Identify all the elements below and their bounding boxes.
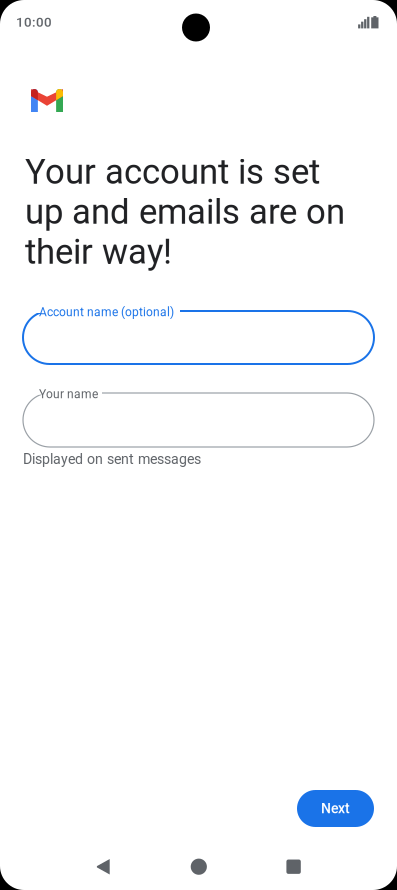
button[interactable]: Next <box>297 790 374 827</box>
staticText: Your name <box>39 387 98 401</box>
staticText: Displayed on sent messages <box>23 451 201 468</box>
staticText: Your account is set <box>25 152 320 192</box>
button[interactable]: Home <box>167 846 231 888</box>
staticText: up and emails are on <box>25 192 345 232</box>
button[interactable]: Account name (optional) <box>23 311 374 364</box>
button[interactable]: Recent apps <box>262 846 325 887</box>
staticText: Account name (optional) <box>39 305 174 319</box>
button[interactable]: Back <box>72 846 134 887</box>
button[interactable]: Your name <box>23 393 374 447</box>
staticText: their way! <box>25 232 172 272</box>
staticText: Next <box>321 800 350 817</box>
staticText: 10:00 <box>16 14 52 30</box>
